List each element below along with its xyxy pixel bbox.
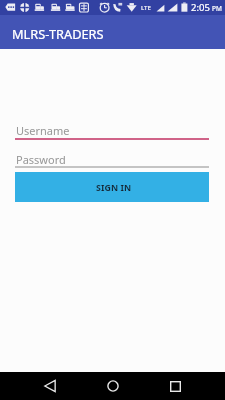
button[interactable]: Home bbox=[94, 372, 131, 400]
button[interactable]: SIGN IN bbox=[15, 172, 209, 202]
button[interactable]: Recent apps bbox=[157, 372, 194, 400]
staticText: SIGN IN bbox=[96, 182, 132, 194]
staticText: MLRS-TRADERS bbox=[12, 25, 104, 42]
button[interactable]: Back bbox=[31, 372, 68, 400]
staticText: Username bbox=[16, 123, 70, 138]
staticText: 2:05 bbox=[191, 1, 210, 14]
staticText: LTE bbox=[141, 4, 151, 12]
staticText: Password bbox=[16, 152, 66, 167]
staticText: PM bbox=[212, 4, 222, 13]
